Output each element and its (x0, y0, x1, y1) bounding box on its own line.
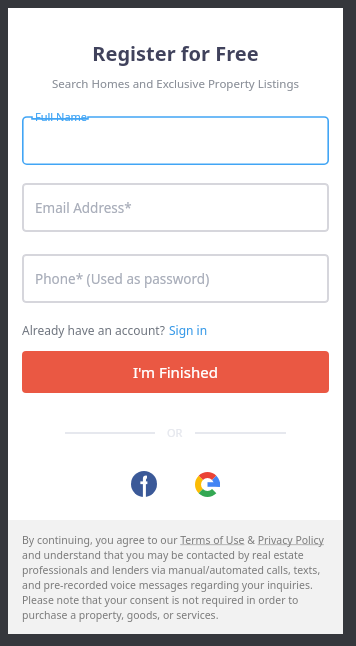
staticText: Full Name (35, 109, 88, 124)
staticText: OR (167, 425, 183, 440)
button[interactable]: Continue with Google (190, 467, 224, 501)
staticText: Register for Free (8, 40, 343, 67)
staticText: Email Address* (35, 199, 132, 217)
button[interactable]: Phone* (Used as password) (22, 254, 329, 303)
staticText: Sign in (169, 322, 208, 338)
button[interactable]: Continue with Facebook (127, 467, 161, 501)
button[interactable]: Full Name (22, 109, 329, 165)
staticText: By continuing, you agree to our Terms of… (22, 533, 329, 622)
button[interactable]: Email Address* (22, 183, 329, 232)
staticText: Search Homes and Exclusive Property List… (8, 76, 343, 92)
button[interactable]: Sign in (169, 322, 208, 338)
staticText: I'm Finished (133, 362, 218, 382)
staticText: Already have an account? (22, 322, 169, 338)
staticText: Phone* (Used as password) (35, 270, 210, 288)
button[interactable]: I'm Finished (22, 351, 329, 393)
